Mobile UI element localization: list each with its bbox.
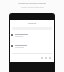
staticText: Settings xyxy=(28,22,37,25)
button[interactable] xyxy=(10,43,54,49)
staticText: Compose Material Catalog xyxy=(18,2,46,5)
staticText: browse all the components xyxy=(21,6,44,8)
button[interactable] xyxy=(10,32,54,38)
